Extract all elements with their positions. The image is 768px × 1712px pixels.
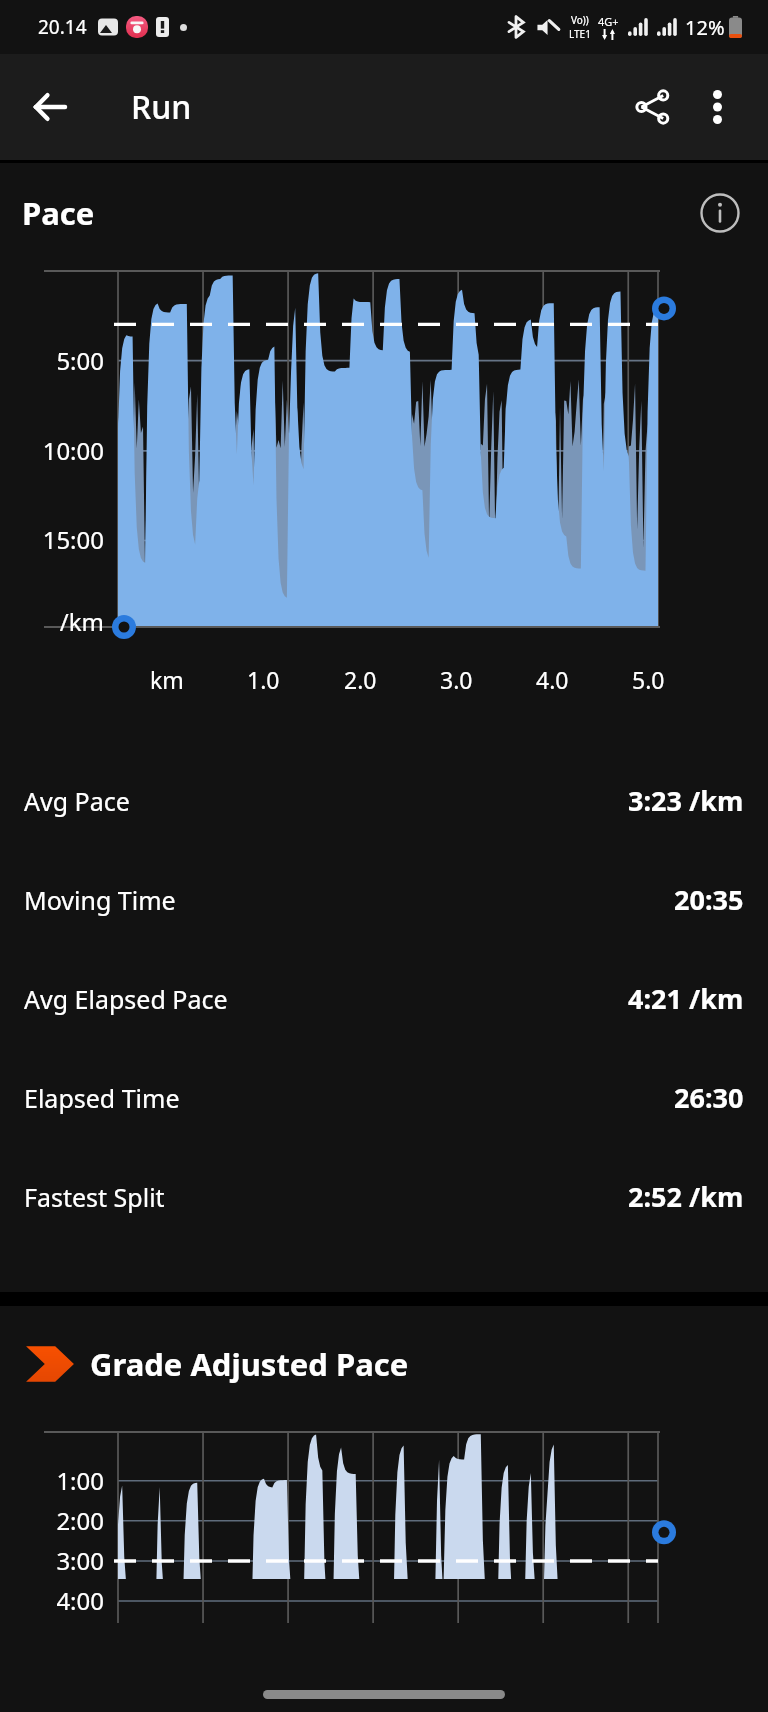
button[interactable]: Moving Time xyxy=(0,850,768,949)
staticText: 3.0 xyxy=(440,664,473,695)
staticText: 4:00 xyxy=(0,1584,104,1617)
staticText: 5.0 xyxy=(632,664,665,695)
button[interactable]: Info xyxy=(694,187,746,239)
staticText: 26:30 xyxy=(674,1079,744,1116)
staticText: 2:00 xyxy=(0,1504,104,1537)
staticText: 20.14 xyxy=(38,14,87,40)
staticText: Pace xyxy=(22,192,95,234)
button[interactable]: Avg Elapsed Pace xyxy=(0,949,768,1048)
button[interactable]: Grade Adjusted Pace xyxy=(0,1338,768,1390)
button[interactable]: Fastest Split xyxy=(0,1147,768,1246)
button[interactable]: More options xyxy=(686,76,748,138)
staticText: 2.0 xyxy=(344,664,377,695)
staticText: 15:00 xyxy=(0,523,104,556)
staticText: 1.0 xyxy=(247,664,280,695)
staticText: 5:00 xyxy=(0,344,104,377)
staticText: 3:23 /km xyxy=(628,782,744,819)
button[interactable]: Share xyxy=(622,76,684,138)
staticText: 12% xyxy=(685,14,725,41)
staticText: Vo)) xyxy=(571,13,589,27)
staticText: /km xyxy=(0,605,104,638)
staticText: LTE1 xyxy=(569,27,591,41)
staticText: 3:00 xyxy=(0,1544,104,1577)
staticText: Elapsed Time xyxy=(24,1081,180,1115)
staticText: 10:00 xyxy=(0,434,104,467)
staticText: Grade Adjusted Pace xyxy=(90,1343,409,1385)
staticText: 4G+ xyxy=(598,14,619,29)
staticText: Run xyxy=(131,85,192,129)
button[interactable]: Elapsed Time xyxy=(0,1048,768,1147)
staticText: 4.0 xyxy=(536,664,569,695)
staticText: 2:52 /km xyxy=(628,1178,744,1215)
button[interactable]: Back xyxy=(20,77,80,137)
staticText: Avg Pace xyxy=(24,784,130,818)
staticText: Fastest Split xyxy=(24,1180,165,1214)
staticText: Avg Elapsed Pace xyxy=(24,982,228,1016)
button[interactable]: Avg Pace xyxy=(0,751,768,850)
staticText: 1:00 xyxy=(0,1464,104,1497)
staticText: 20:35 xyxy=(674,881,744,918)
staticText: km xyxy=(150,664,184,695)
staticText: 4:21 /km xyxy=(628,980,744,1017)
staticText: Moving Time xyxy=(24,883,176,917)
